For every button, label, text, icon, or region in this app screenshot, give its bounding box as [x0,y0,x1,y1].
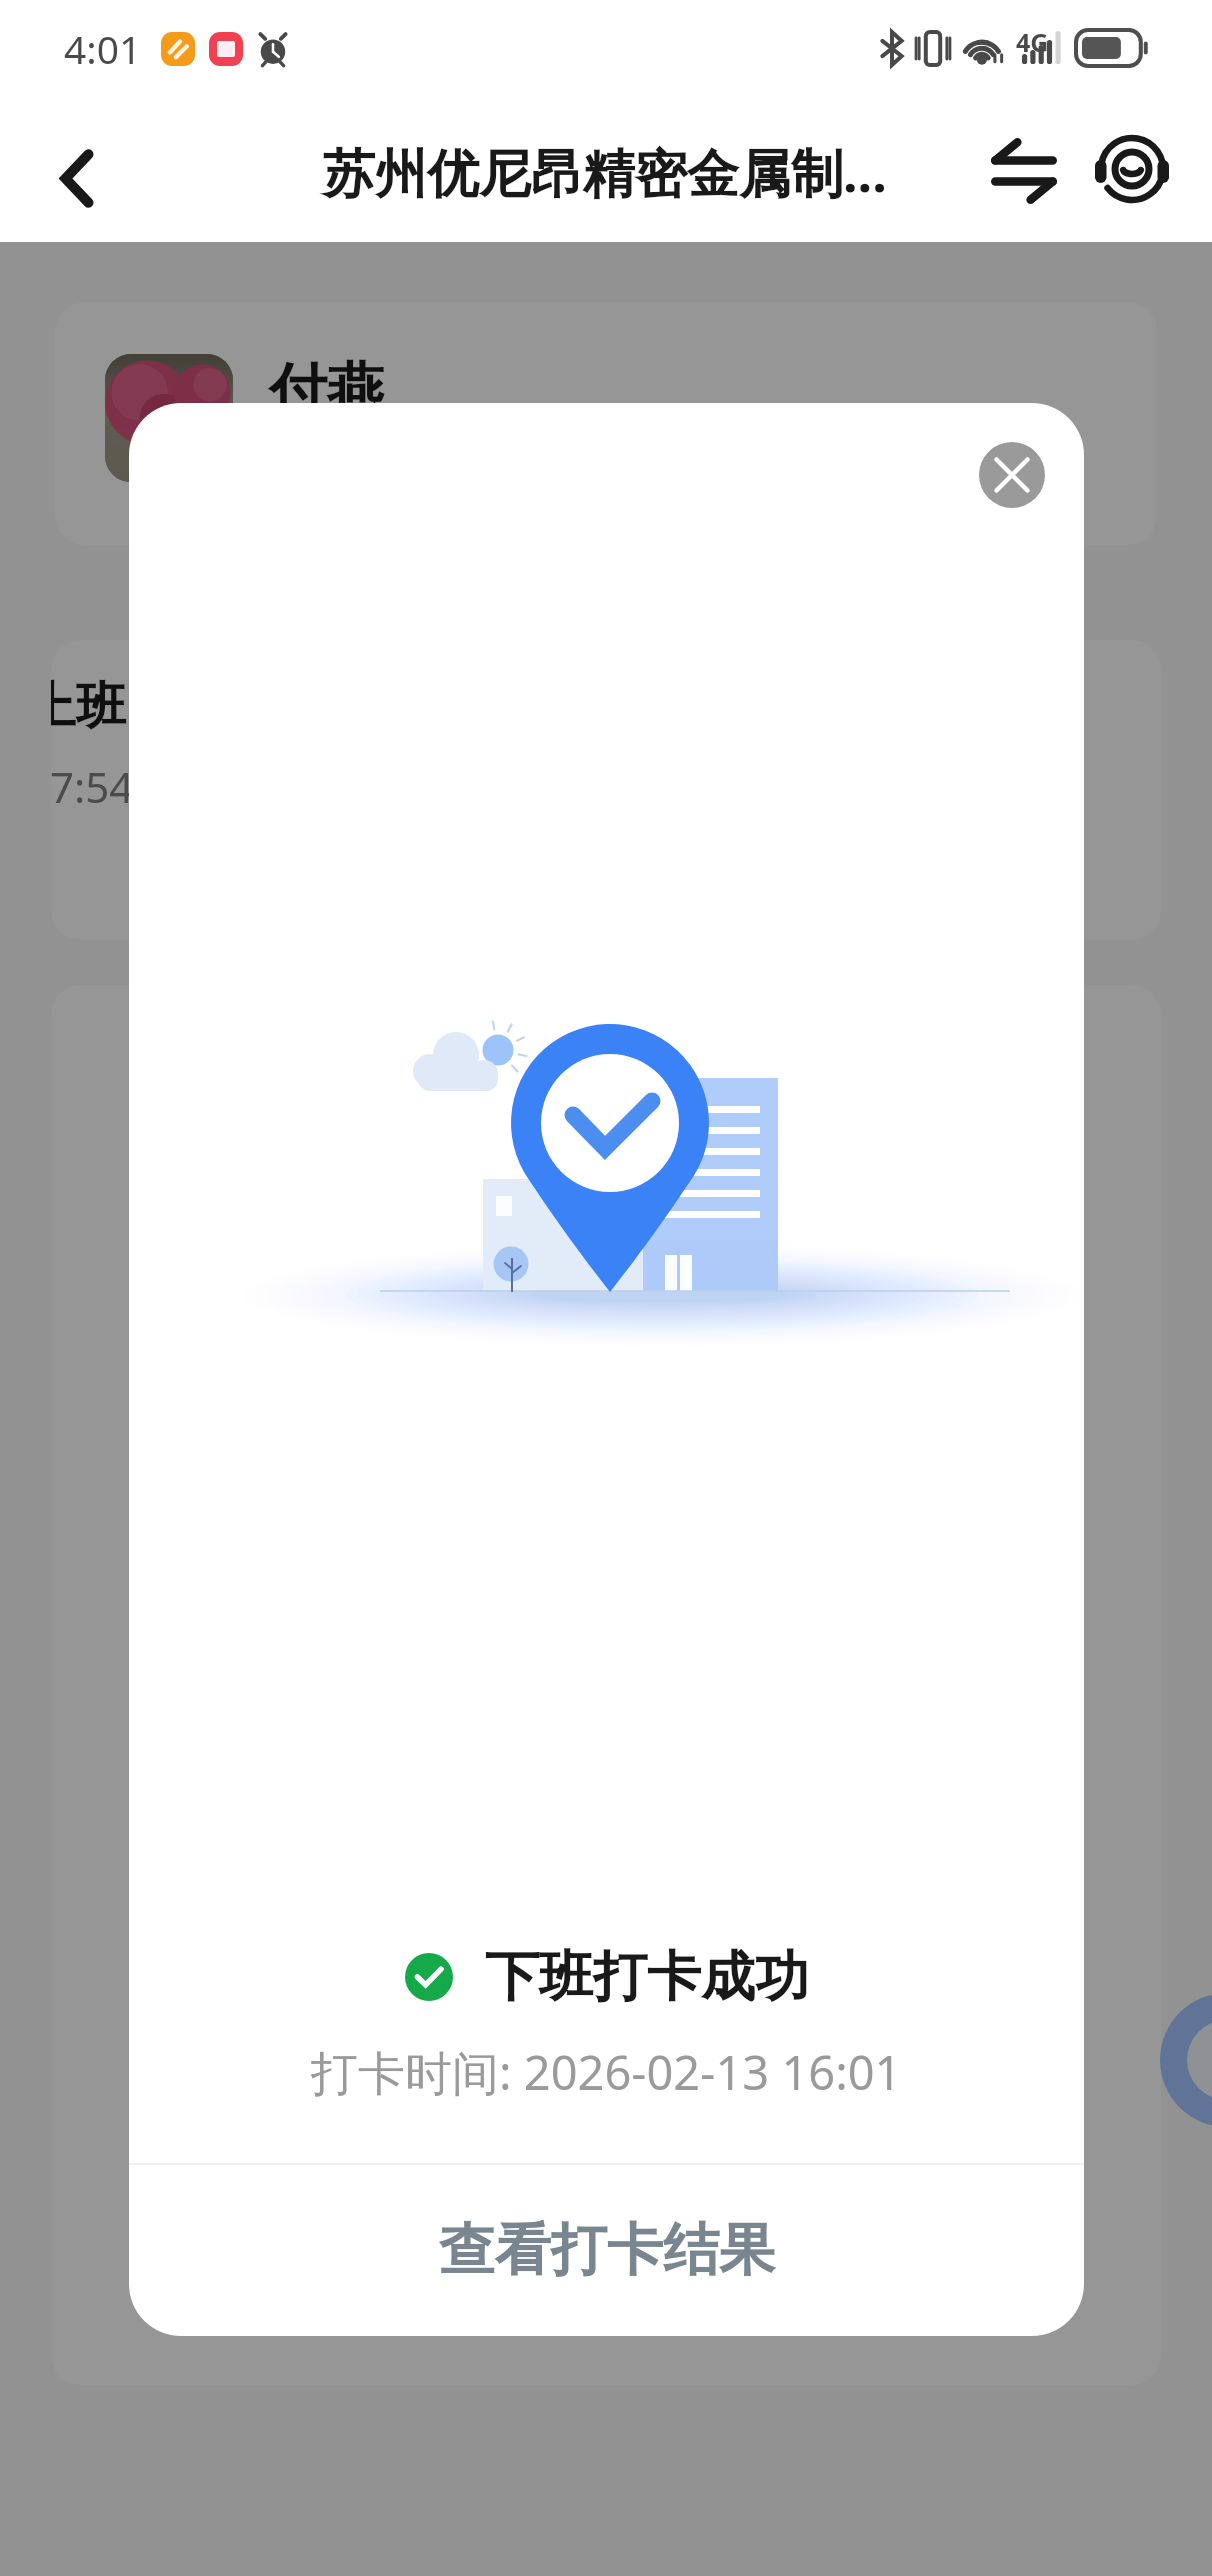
staticText: 付燕 [269,354,385,427]
staticText: 打卡时间: 2026-02-13 16:01 [311,2040,902,2104]
staticText: 07:54 已打卡 [51,758,271,815]
staticText: 4:01 [64,22,142,75]
button[interactable]: Close [979,442,1045,508]
button[interactable]: Transfer [974,121,1074,221]
button[interactable]: 查看打卡结果 [129,2165,1084,2336]
button[interactable]: Assistant [1160,1993,1212,2127]
button[interactable]: Customer service [1080,119,1184,223]
staticText: 苏州优尼昂精密金属制... [323,136,887,207]
staticText: 下班打卡成功 [485,1943,809,2011]
staticText: 上班 08:00 [51,670,268,738]
staticText: 查看打卡结果 [439,2215,775,2286]
button[interactable]: Back [19,120,135,236]
staticText: 4G [1016,25,1049,59]
